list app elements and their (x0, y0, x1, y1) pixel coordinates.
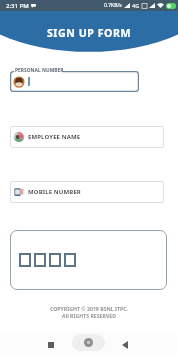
button[interactable]: Home (72, 334, 105, 351)
staticText: 2:31 PM (6, 2, 29, 10)
button[interactable]: Back (108, 332, 142, 355)
staticText: MOBILE NUMBER (28, 188, 81, 196)
staticText: EMPLOYEE NAME (28, 133, 81, 141)
staticText: COPYRIGHT © 2019 BSNL ITPC. (50, 305, 128, 312)
button[interactable]: Recents (34, 332, 68, 355)
button[interactable] (10, 71, 139, 92)
staticText: PERSONAL NUMBER (15, 67, 64, 74)
staticText: SIGN UP FORM (0, 26, 178, 40)
staticText: 4G (132, 2, 140, 10)
button[interactable] (10, 230, 167, 290)
button[interactable]: EMPLOYEE NAME (10, 126, 164, 148)
staticText: 0.7KB/s (104, 2, 122, 9)
staticText: All RIGHTS RESERVED (62, 312, 116, 319)
button[interactable]: MOBILE NUMBER (10, 181, 164, 203)
